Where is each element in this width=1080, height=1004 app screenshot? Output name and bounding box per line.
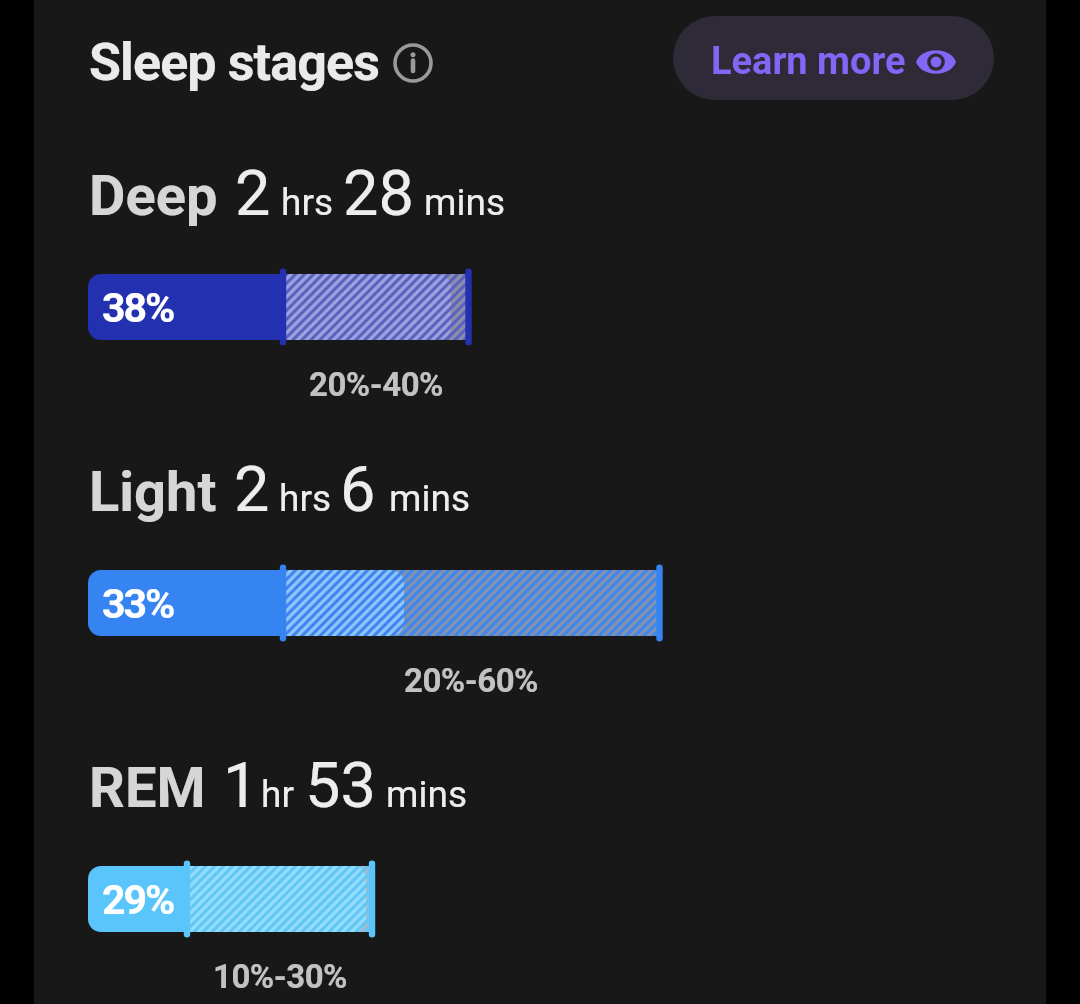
staticText: 2 (235, 157, 271, 231)
staticText: hrs (281, 181, 334, 224)
staticText: Learn more (711, 39, 906, 84)
staticText: 28 (343, 157, 414, 231)
button[interactable]: 38% (34, 266, 1046, 348)
staticText: REM (89, 755, 206, 821)
button[interactable]: Sleep stages (89, 32, 433, 93)
staticText: 10%-30% (30, 957, 530, 996)
staticText: Deep (89, 163, 218, 229)
staticText: 6 (340, 453, 376, 527)
staticText: mins (389, 477, 470, 520)
staticText: hr (261, 773, 294, 816)
staticText: 53 (305, 749, 376, 823)
staticText: 29% (102, 876, 174, 924)
other: Learn more (916, 47, 956, 77)
staticText: 20%-60% (221, 661, 721, 700)
staticText: hrs (279, 477, 332, 520)
staticText: 1 (223, 749, 259, 823)
staticText: Sleep stages (89, 32, 379, 93)
button[interactable]: 29% (34, 858, 1046, 940)
staticText: mins (424, 181, 505, 224)
other: Information about sleep stages (393, 43, 433, 83)
staticText: 20%-40% (126, 365, 626, 404)
staticText: Light (89, 459, 217, 525)
staticText: 2 (234, 453, 270, 527)
button[interactable]: 33% (34, 562, 1046, 644)
staticText: 33% (102, 580, 174, 628)
staticText: mins (386, 773, 467, 816)
button[interactable]: Learn more (673, 16, 994, 100)
staticText: 38% (102, 284, 174, 332)
